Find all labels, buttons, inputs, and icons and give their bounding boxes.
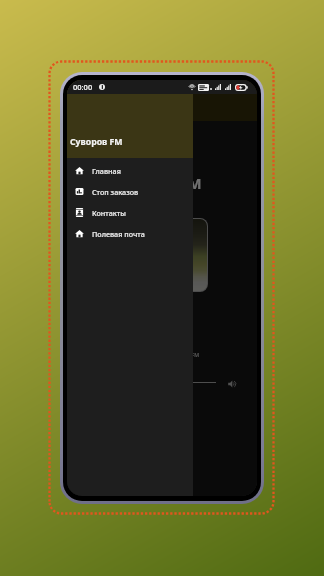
staticText: Суворов FM <box>117 174 202 193</box>
button[interactable]: Главная <box>67 160 193 181</box>
staticText: Главная <box>92 166 121 176</box>
button[interactable]: Полевая почта <box>67 223 193 244</box>
staticText: Стоп заказов <box>92 187 139 197</box>
staticText: Суворов FM <box>168 351 200 358</box>
staticText: 00:00 <box>73 82 93 92</box>
button[interactable]: Контакты <box>67 202 193 223</box>
staticText: Контакты <box>92 208 126 218</box>
button[interactable]: Стоп заказов <box>67 181 193 202</box>
staticText: Суворов FM <box>70 136 123 148</box>
staticText: Полевая почта <box>92 229 145 239</box>
